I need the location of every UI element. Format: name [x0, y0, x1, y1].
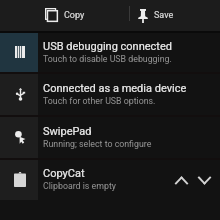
staticText: CopyCat	[43, 167, 85, 180]
button[interactable]: Copy	[0, 0, 129, 31]
button[interactable]: USB debugging connected	[0, 32, 220, 72]
staticText: Save	[154, 10, 174, 21]
staticText: Copy	[64, 10, 85, 21]
button[interactable]: SwipePad	[0, 117, 220, 158]
staticText: Clipboard is empty	[43, 181, 116, 191]
staticText: Running; select to configure	[43, 139, 152, 149]
button[interactable]: CopyCat	[0, 159, 220, 200]
button[interactable]: Connected as a media device	[0, 74, 220, 115]
button[interactable]: Expand	[197, 173, 211, 187]
staticText: Touch for other USB options.	[43, 96, 156, 106]
staticText: SwipePad	[43, 125, 92, 138]
button[interactable]: Collapse	[174, 173, 188, 187]
staticText: Connected as a media device	[43, 82, 187, 95]
button[interactable]: Save	[129, 0, 220, 31]
staticText: Touch to disable USB debugging.	[43, 54, 172, 64]
staticText: USB debugging connected	[43, 40, 172, 53]
